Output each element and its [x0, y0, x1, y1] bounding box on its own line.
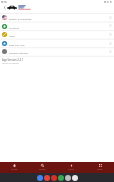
button[interactable] — [0, 48, 114, 56]
staticText: App Version 2.4.1 — [2, 58, 24, 62]
button[interactable] — [0, 40, 114, 48]
button[interactable] — [0, 23, 114, 31]
button[interactable]: Alerts — [56, 162, 85, 173]
staticText: Home — [11, 168, 18, 171]
staticText: Region & Language — [9, 17, 32, 20]
staticText: Search — [39, 168, 46, 171]
button[interactable]: More — [85, 162, 114, 173]
button[interactable]: Home — [0, 162, 28, 173]
staticText: Rate Our App — [9, 43, 25, 46]
staticText: General Settings — [9, 51, 28, 54]
button[interactable] — [0, 31, 114, 39]
button[interactable]: Back — [0, 3, 8, 11]
staticText: Terms of Service — [2, 62, 19, 65]
button[interactable]: Search — [28, 162, 56, 173]
staticText: Currency — [9, 26, 20, 29]
staticText: Units — [9, 34, 15, 37]
staticText: More — [97, 168, 103, 171]
staticText: Alerts — [68, 168, 74, 171]
button[interactable] — [0, 14, 114, 22]
